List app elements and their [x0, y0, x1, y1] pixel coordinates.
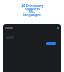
staticText: supports [25, 6, 40, 11]
staticText: languages [23, 12, 41, 17]
staticText: 55+ [29, 9, 35, 14]
staticText: AI Dictionary [21, 3, 44, 8]
